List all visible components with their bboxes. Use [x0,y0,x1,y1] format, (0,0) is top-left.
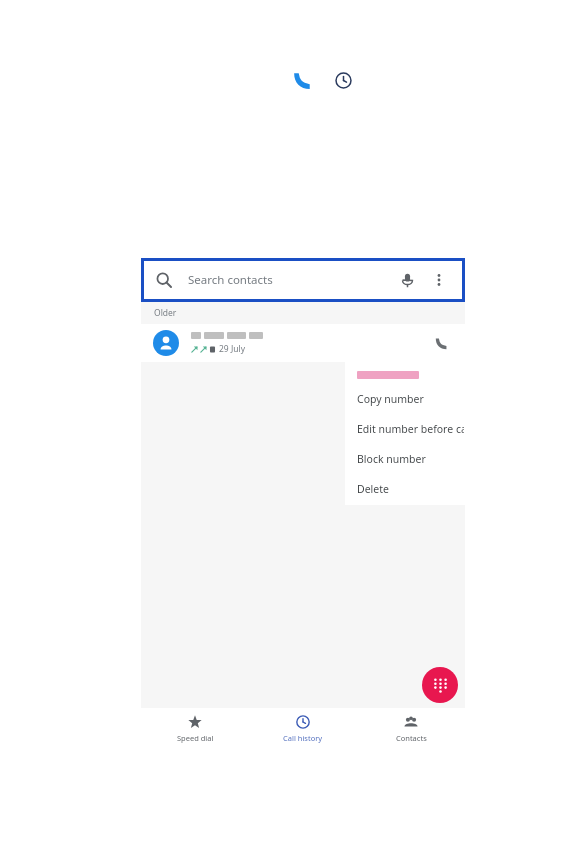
button[interactable]: Dialpad [422,667,458,703]
button[interactable]: Edit number before call [345,414,465,444]
button[interactable]: 29 July [141,324,465,362]
staticText: Speed dial [177,733,214,743]
button[interactable]: Speed dial [141,708,249,750]
button[interactable]: Block number [345,444,465,474]
button[interactable]: Search contacts [144,261,462,299]
button[interactable]: Phone [288,66,316,94]
staticText: Call history [283,733,323,743]
staticText: Search contacts [188,272,273,288]
button[interactable]: Copy number [345,384,465,414]
button[interactable]: Call back [429,331,453,355]
staticText: 29 July [219,343,246,355]
staticText: Copy number [357,392,424,406]
button[interactable]: Contacts [357,708,465,750]
staticText: Edit number before call [357,422,464,436]
button[interactable]: Call history [249,708,357,750]
staticText: Delete [357,482,389,496]
button[interactable]: Call history [329,66,357,94]
staticText: Older [154,307,177,319]
staticText: Block number [357,452,426,466]
staticText: Contacts [396,733,427,743]
button[interactable]: Delete [345,474,465,504]
button[interactable]: More options [428,269,450,291]
button[interactable]: Voice search [395,268,419,292]
